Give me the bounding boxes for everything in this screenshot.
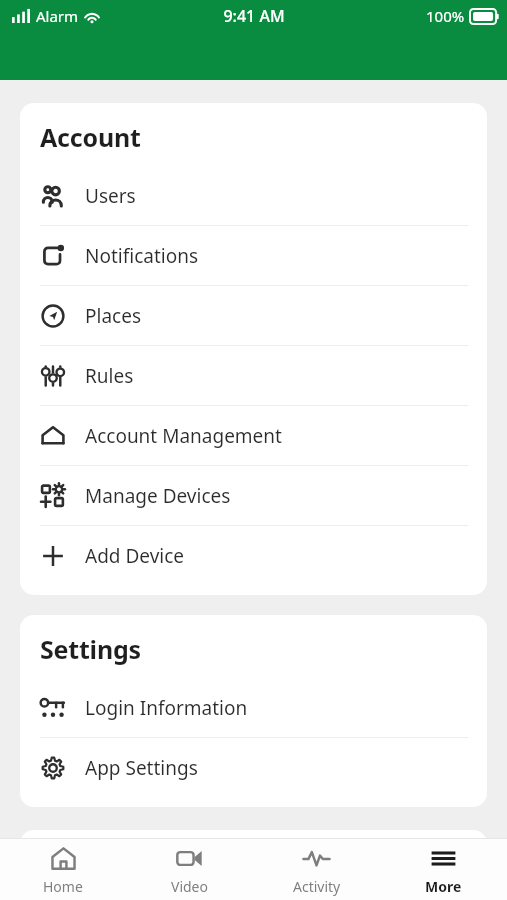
button[interactable]: Help	[20, 893, 487, 900]
staticText: More	[425, 877, 462, 896]
staticText: 100%	[426, 6, 465, 26]
staticText: Add Device	[85, 543, 185, 569]
button[interactable]: Rules	[20, 346, 487, 405]
staticText: Account	[40, 120, 141, 154]
button[interactable]: Add Device	[20, 526, 487, 585]
button[interactable]: More	[380, 839, 507, 900]
staticText: Account Management	[85, 423, 282, 449]
staticText: 9:41 AM	[223, 5, 285, 27]
staticText: Activity	[293, 877, 341, 896]
staticText: Settings	[40, 632, 141, 666]
button[interactable]: Notifications	[20, 226, 487, 285]
staticText: Video	[171, 877, 208, 896]
button[interactable]: Users	[20, 166, 487, 225]
staticText: Places	[85, 303, 141, 329]
staticText: Login Information	[85, 695, 248, 721]
button[interactable]: Activity	[253, 839, 380, 900]
button[interactable]: Account Management	[20, 406, 487, 465]
staticText: Users	[85, 183, 136, 209]
button[interactable]: Home	[0, 839, 126, 900]
button[interactable]: Video	[126, 839, 253, 900]
staticText: Rules	[85, 363, 134, 389]
staticText: Manage Devices	[85, 483, 231, 509]
staticText: Alarm	[36, 6, 79, 26]
button[interactable]: Places	[20, 286, 487, 345]
button[interactable]: App Settings	[20, 738, 487, 797]
button[interactable]: Login Information	[20, 678, 487, 737]
staticText: About	[40, 847, 115, 881]
staticText: App Settings	[85, 755, 198, 781]
staticText: Home	[43, 877, 83, 896]
staticText: Notifications	[85, 243, 199, 269]
button[interactable]: Manage Devices	[20, 466, 487, 525]
